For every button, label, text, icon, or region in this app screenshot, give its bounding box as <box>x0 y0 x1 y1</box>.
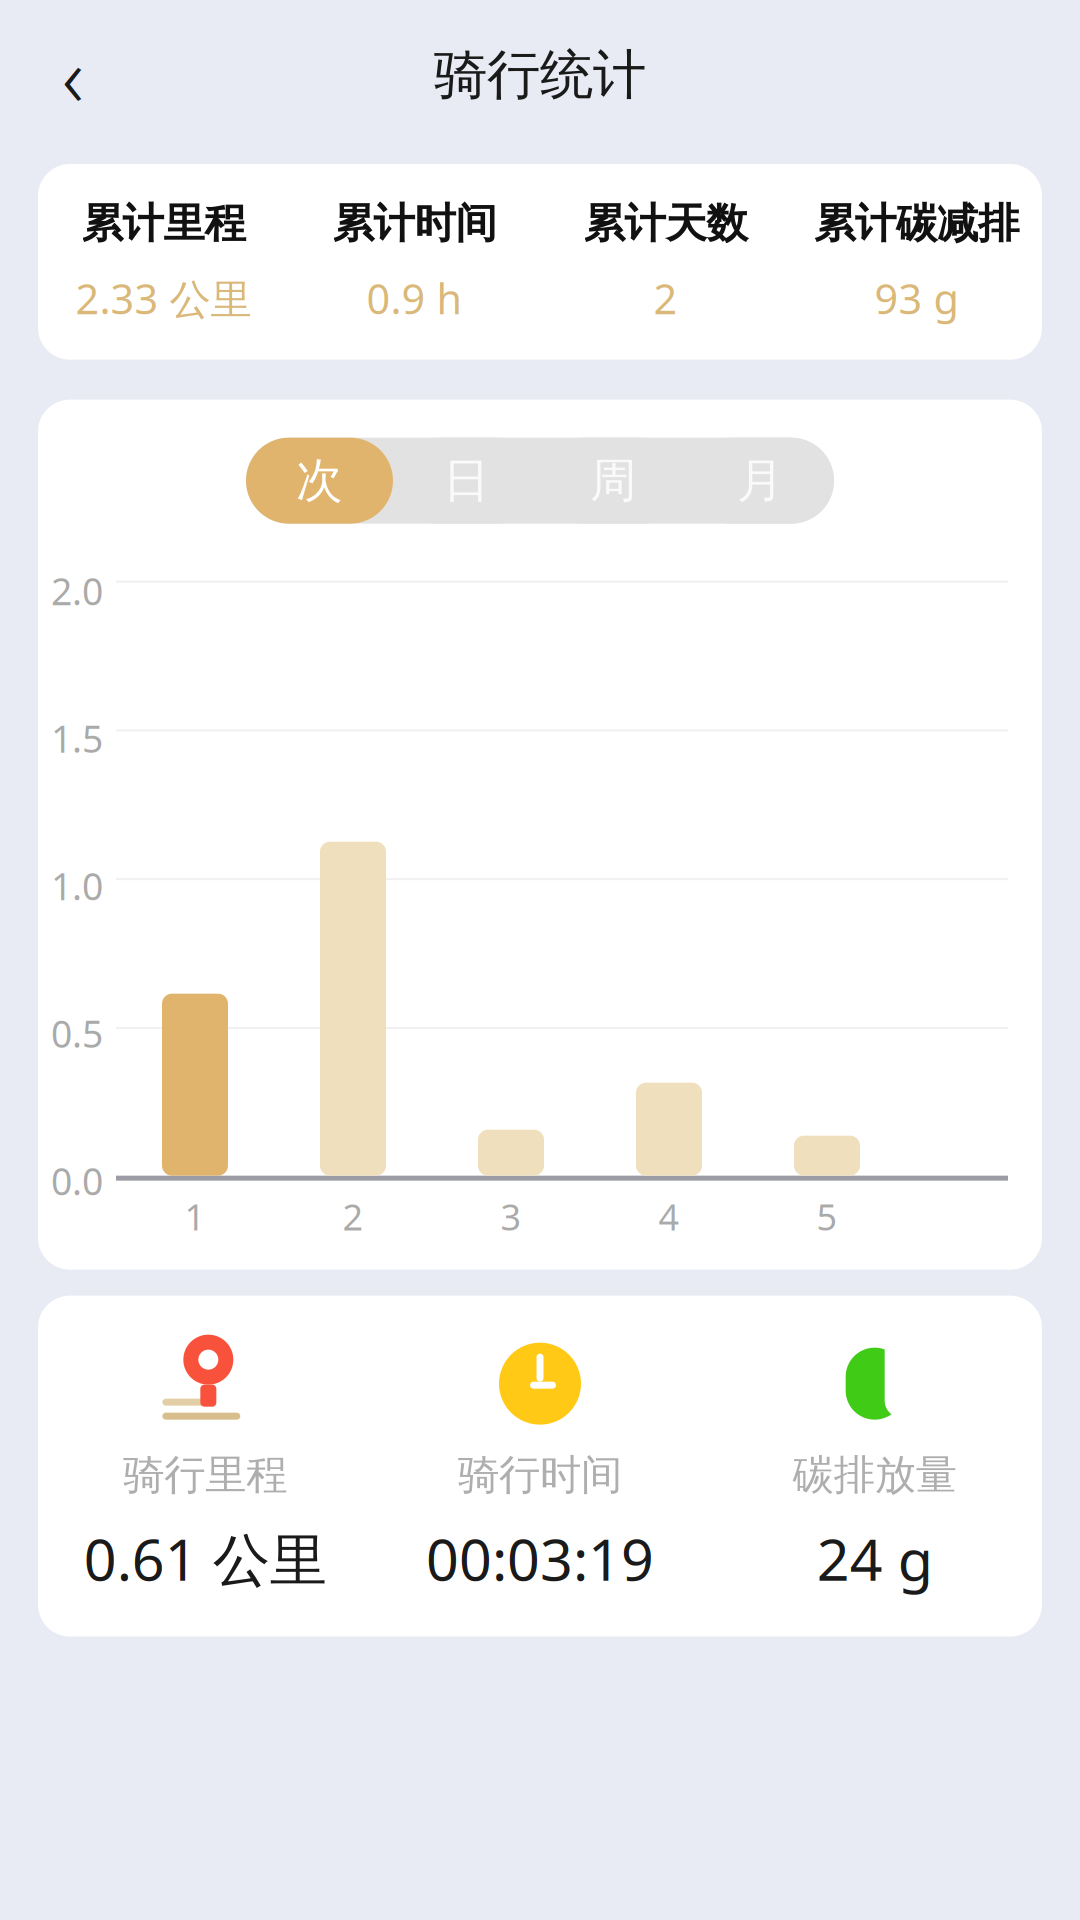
staticText: ‹ <box>62 20 84 130</box>
staticText: 93 g <box>874 271 958 326</box>
button[interactable]: 次 <box>246 438 393 524</box>
staticText: 次 <box>296 452 343 509</box>
button[interactable]: 周 <box>540 438 687 524</box>
staticText: 月 <box>737 452 784 509</box>
staticText: 骑行时间 <box>458 1450 622 1500</box>
staticText: 0.9 h <box>366 271 462 326</box>
staticText: 0.0 <box>51 1156 103 1205</box>
staticText: 0.61 公里 <box>84 1520 327 1596</box>
staticText: 碳排放量 <box>793 1450 957 1500</box>
staticText: 周 <box>590 452 637 509</box>
staticText: 2.33 公里 <box>75 271 251 326</box>
staticText: 2 <box>342 1193 363 1240</box>
button[interactable]: 日 <box>393 438 540 524</box>
staticText: 累计碳减排 <box>814 198 1019 249</box>
staticText: 0.5 <box>51 1008 103 1058</box>
staticText: 累计里程 <box>81 198 245 249</box>
staticText: 累计时间 <box>332 198 496 249</box>
staticText: 骑行统计 <box>434 42 646 108</box>
button[interactable]: Back <box>30 32 116 118</box>
staticText: 5 <box>816 1193 837 1240</box>
staticText: 1.0 <box>51 861 103 910</box>
staticText: 2.0 <box>51 566 103 615</box>
button[interactable]: 月 <box>687 438 834 524</box>
staticText: 24 g <box>817 1520 933 1596</box>
staticText: 1.5 <box>51 713 103 763</box>
staticText: 日 <box>443 452 490 509</box>
staticText: 1 <box>184 1193 205 1240</box>
staticText: 3 <box>500 1193 521 1240</box>
staticText: 4 <box>658 1193 679 1240</box>
staticText: 2 <box>653 271 677 326</box>
staticText: 骑行里程 <box>123 1450 287 1500</box>
staticText: 00:03:19 <box>426 1520 654 1596</box>
staticText: 累计天数 <box>583 198 747 249</box>
